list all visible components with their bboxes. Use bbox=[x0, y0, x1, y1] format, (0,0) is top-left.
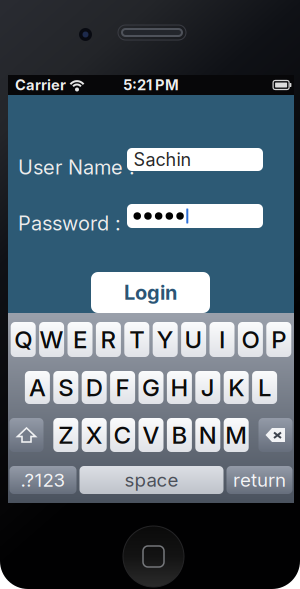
staticText: L bbox=[258, 373, 271, 402]
staticText: Sachin bbox=[133, 149, 191, 170]
staticText: Y bbox=[157, 325, 174, 354]
staticText: 5:21 PM bbox=[123, 76, 179, 94]
staticText: G bbox=[142, 373, 160, 402]
button[interactable]: Shift bbox=[9, 418, 43, 452]
staticText: space bbox=[124, 469, 178, 491]
button[interactable]: Numbers and symbols bbox=[9, 466, 76, 494]
staticText: X bbox=[86, 420, 103, 449]
staticText: .?123 bbox=[20, 469, 65, 491]
button[interactable]: W bbox=[39, 322, 64, 357]
button[interactable]: Return bbox=[226, 466, 292, 494]
button[interactable] bbox=[127, 204, 263, 228]
staticText: K bbox=[228, 373, 244, 402]
staticText: Carrier bbox=[15, 76, 66, 94]
button[interactable]: L bbox=[252, 371, 277, 404]
button[interactable]: X bbox=[82, 418, 107, 452]
button[interactable]: M bbox=[224, 418, 249, 452]
staticText: C bbox=[114, 420, 132, 449]
staticText: User Name : bbox=[18, 155, 135, 179]
staticText: O bbox=[241, 325, 259, 354]
staticText: I bbox=[219, 325, 225, 354]
button[interactable]: H bbox=[167, 371, 192, 404]
button[interactable]: E bbox=[67, 322, 92, 357]
staticText: N bbox=[199, 420, 217, 449]
button[interactable]: Q bbox=[11, 322, 36, 357]
button[interactable]: C bbox=[110, 418, 135, 452]
staticText: return bbox=[233, 469, 286, 491]
button[interactable]: space bbox=[79, 466, 223, 494]
button[interactable]: A bbox=[25, 371, 50, 404]
button[interactable]: V bbox=[138, 418, 163, 452]
button[interactable]: J bbox=[195, 371, 220, 404]
button[interactable]: B bbox=[167, 418, 192, 452]
button[interactable]: Y bbox=[153, 322, 178, 357]
staticText: S bbox=[58, 373, 73, 402]
staticText: F bbox=[116, 373, 130, 402]
button[interactable]: Z bbox=[53, 418, 78, 452]
staticText: R bbox=[100, 325, 116, 354]
button[interactable]: F bbox=[110, 371, 135, 404]
button[interactable]: Delete bbox=[258, 418, 292, 452]
button[interactable]: S bbox=[53, 371, 78, 404]
button[interactable]: K bbox=[224, 371, 249, 404]
staticText: Login bbox=[124, 280, 177, 305]
staticText: B bbox=[171, 420, 187, 449]
staticText: H bbox=[170, 373, 188, 402]
button[interactable]: G bbox=[138, 371, 163, 404]
staticText: Q bbox=[14, 325, 32, 354]
button[interactable]: U bbox=[181, 322, 206, 357]
staticText: P bbox=[271, 325, 286, 354]
button[interactable]: T bbox=[124, 322, 149, 357]
button[interactable]: Login bbox=[91, 272, 210, 313]
button[interactable]: R bbox=[96, 322, 121, 357]
staticText: T bbox=[129, 325, 144, 354]
staticText: D bbox=[86, 373, 103, 402]
staticText: Password : bbox=[18, 211, 121, 235]
button[interactable]: D bbox=[82, 371, 107, 404]
button[interactable]: N bbox=[195, 418, 220, 452]
staticText: A bbox=[29, 373, 46, 402]
staticText: M bbox=[225, 420, 247, 449]
staticText: W bbox=[40, 325, 64, 354]
staticText: Z bbox=[58, 420, 73, 449]
button[interactable]: Sachin bbox=[127, 148, 263, 171]
button[interactable]: O bbox=[238, 322, 263, 357]
button[interactable]: P bbox=[266, 322, 291, 357]
staticText: E bbox=[73, 325, 87, 354]
staticText: V bbox=[142, 420, 159, 449]
staticText: J bbox=[201, 373, 215, 402]
staticText: U bbox=[185, 325, 203, 354]
button[interactable]: I bbox=[209, 322, 234, 357]
